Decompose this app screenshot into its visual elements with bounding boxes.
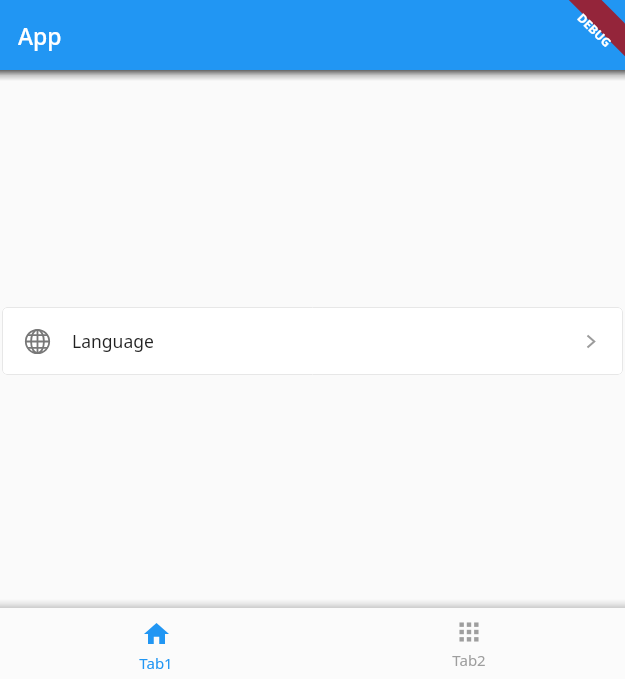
staticText: App	[18, 20, 62, 51]
staticText: Language	[72, 329, 154, 353]
other: Tab2	[458, 621, 480, 643]
button[interactable]: Tab2	[312, 608, 625, 679]
button[interactable]: Tab1	[0, 608, 312, 679]
staticText: Tab2	[452, 650, 486, 670]
other: Tab1	[144, 621, 169, 646]
staticText: DEBUG	[574, 9, 615, 50]
staticText: Tab1	[139, 653, 173, 673]
button[interactable]: Language	[2, 307, 623, 375]
